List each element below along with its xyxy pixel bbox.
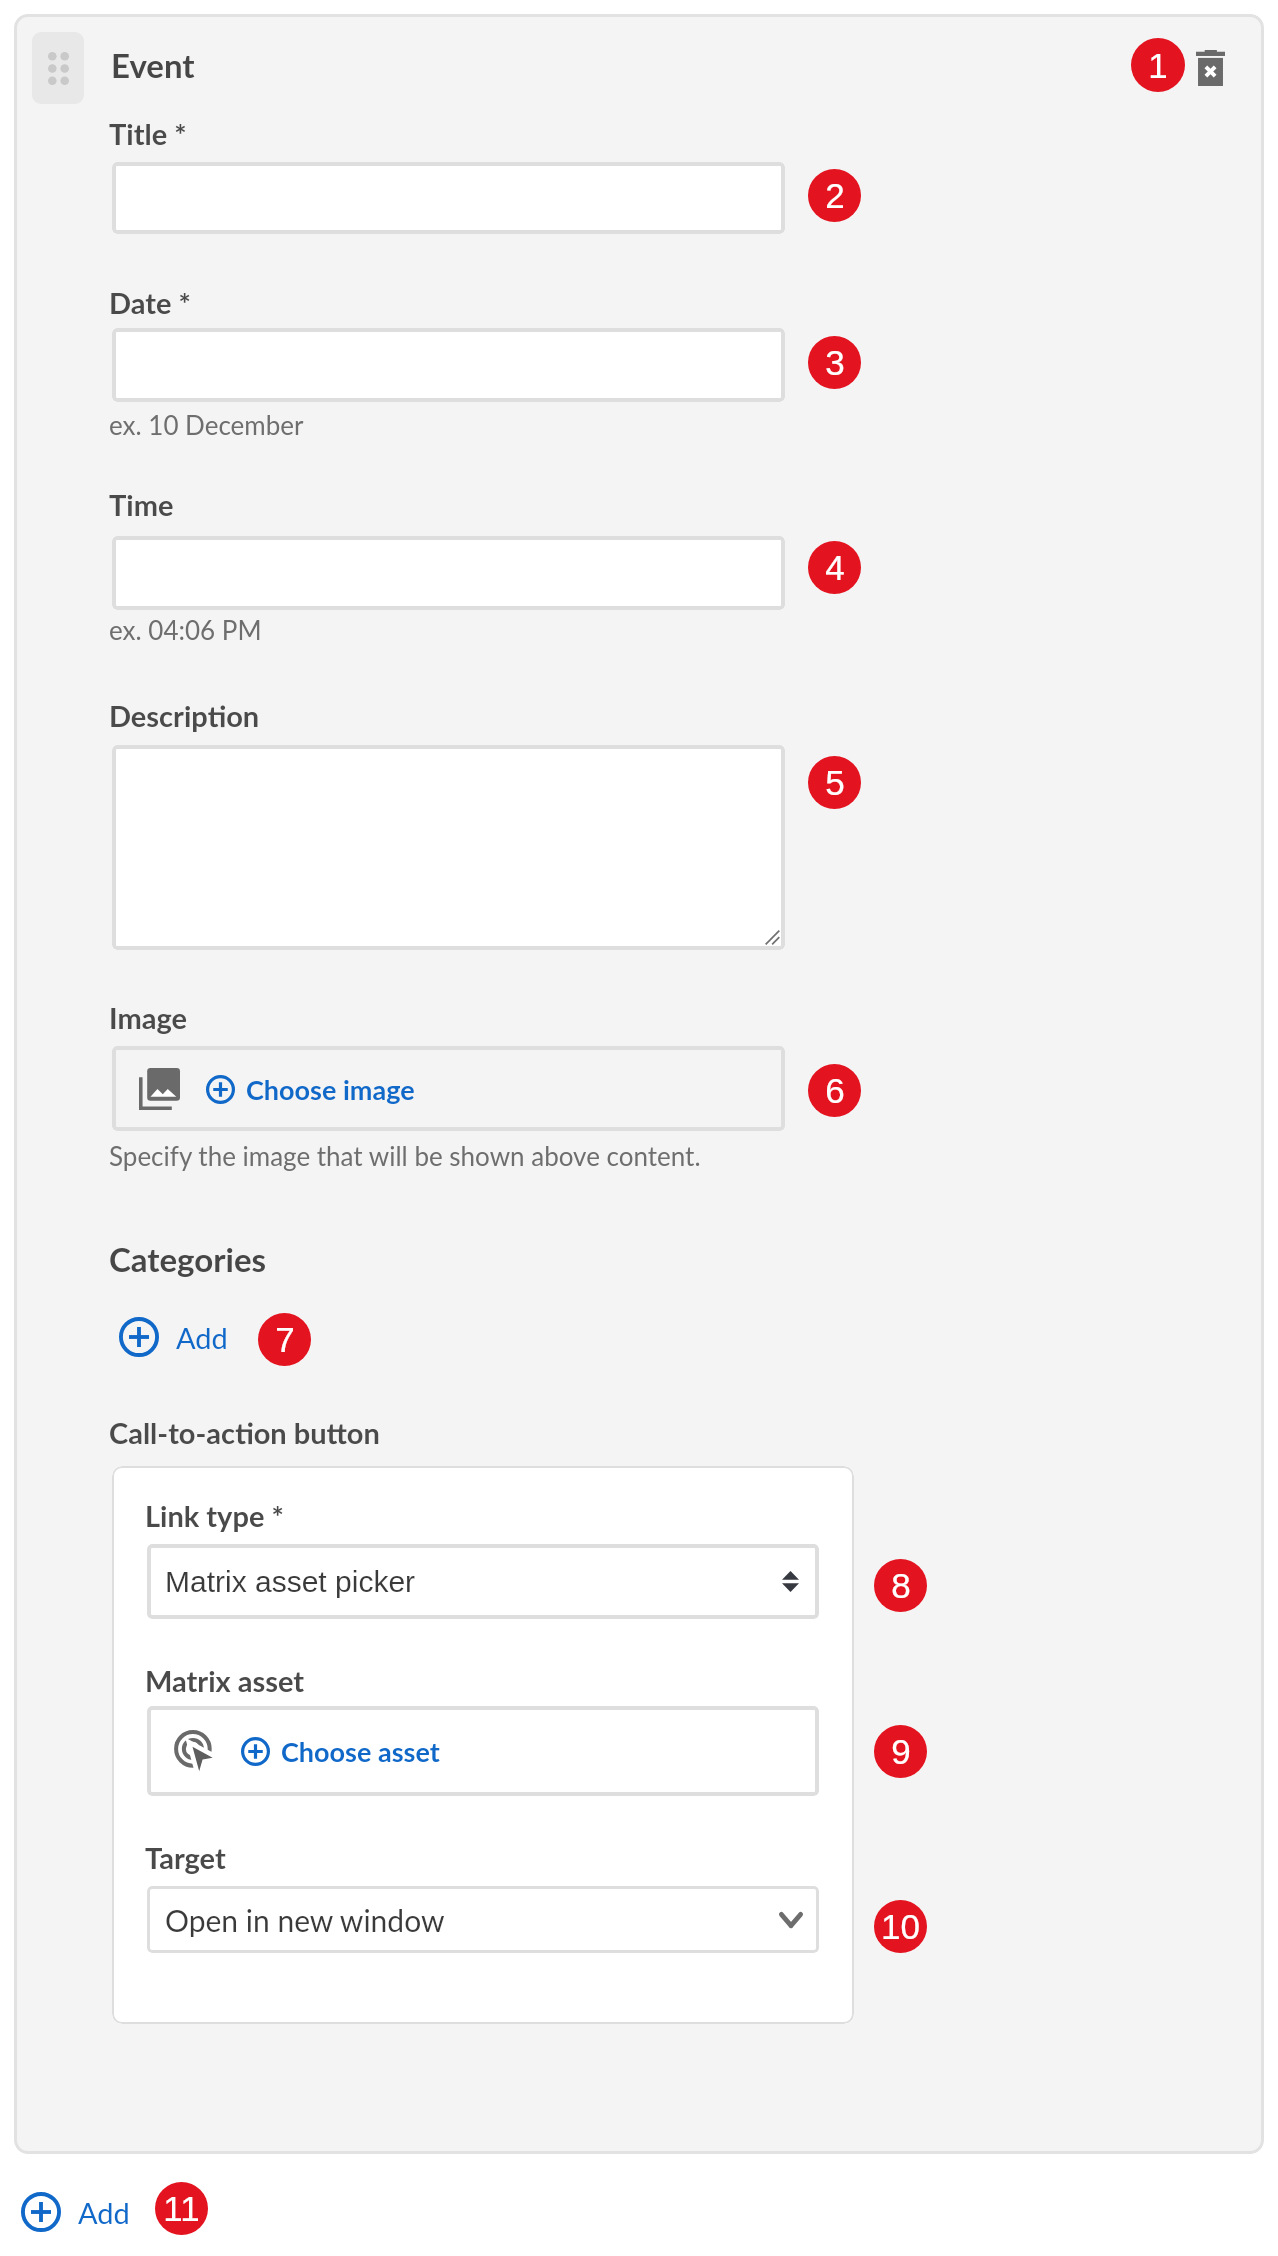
staticText: 9 [891, 1732, 911, 1771]
staticText: 8 [891, 1566, 911, 1605]
staticText: Event [111, 45, 195, 85]
staticText: 3 [825, 343, 845, 382]
button[interactable]: Open in new window [147, 1886, 819, 1953]
button[interactable] [112, 745, 785, 950]
staticText: ex. 10 December [109, 409, 304, 440]
staticText: Open in new window [165, 1902, 445, 1938]
staticText: Call-to-action button [109, 1415, 380, 1450]
button[interactable]: Delete [1186, 44, 1234, 92]
staticText: Specify the image that will be shown abo… [109, 1140, 701, 1171]
button[interactable]: Choose asset [147, 1706, 819, 1796]
button[interactable] [112, 536, 785, 610]
staticText: ex. 04:06 PM [109, 614, 262, 645]
staticText: Choose image [246, 1073, 415, 1105]
staticText: 10 [881, 1907, 920, 1946]
button[interactable] [112, 328, 785, 402]
staticText: Matrix asset picker [165, 1565, 416, 1599]
staticText: Categories [109, 1239, 267, 1279]
button[interactable]: Choose image [112, 1046, 785, 1131]
button[interactable]: Reorder [32, 32, 84, 104]
staticText: Image [109, 1000, 187, 1035]
staticText: Time [109, 487, 174, 522]
staticText: Link type * [145, 1498, 284, 1533]
button[interactable]: Matrix asset picker [147, 1544, 819, 1619]
staticText: 4 [825, 548, 845, 587]
staticText: Matrix asset [145, 1663, 305, 1698]
staticText: 5 [825, 763, 845, 802]
staticText: Add [176, 1320, 228, 1355]
staticText: 7 [275, 1320, 295, 1359]
staticText: Date * [109, 285, 191, 320]
staticText: 1 [1148, 46, 1168, 85]
staticText: 6 [825, 1071, 845, 1110]
staticText: 2 [825, 176, 845, 215]
button[interactable]: Add [21, 2192, 130, 2232]
staticText: Title * [109, 116, 187, 151]
button[interactable] [112, 162, 785, 234]
staticText: Target [145, 1840, 226, 1875]
staticText: Choose asset [281, 1735, 440, 1767]
button[interactable]: Add [119, 1317, 228, 1357]
staticText: Description [109, 698, 260, 733]
staticText: 11 [163, 2189, 200, 2228]
staticText: Add [78, 2195, 130, 2230]
